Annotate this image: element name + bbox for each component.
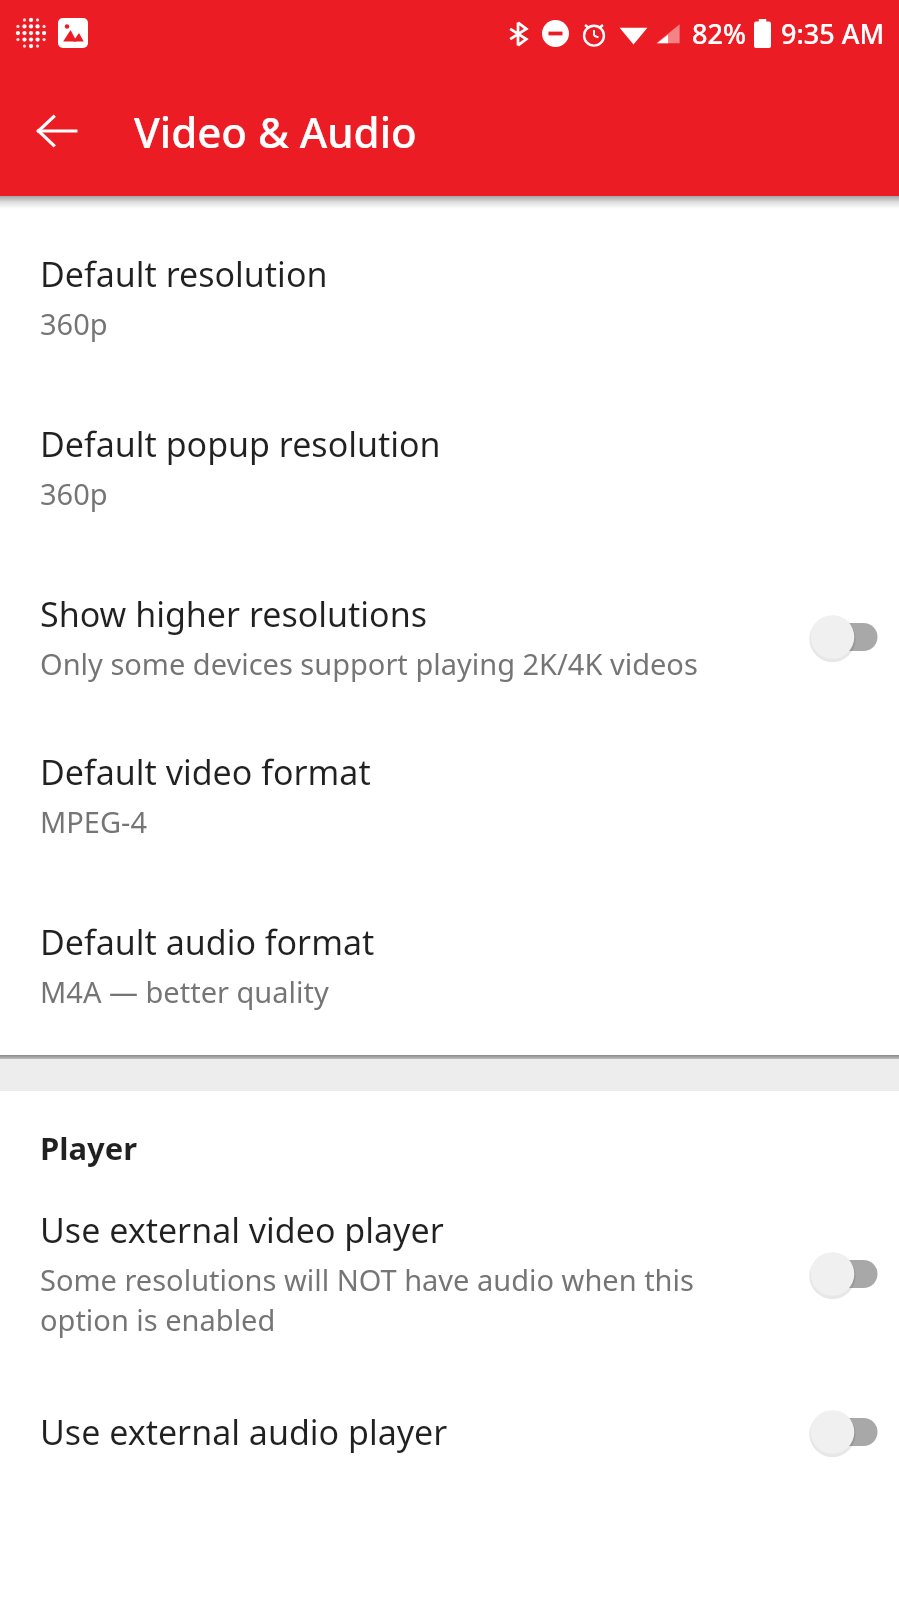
staticText: Use external video player [40,1207,444,1253]
button[interactable]: Toggle [793,611,881,663]
staticText: Default audio format [40,919,375,965]
button[interactable]: Use external audio player [0,1376,899,1498]
staticText: 360p [40,304,108,343]
staticText: Default resolution [40,251,328,297]
staticText: 82% [692,15,746,52]
button[interactable]: Use external video player [0,1185,899,1376]
button[interactable]: Default video format [0,719,899,883]
button[interactable]: Toggle [793,1248,881,1300]
staticText: Some resolutions will NOT have audio whe… [40,1260,779,1340]
button[interactable]: Default audio format [0,883,899,1055]
staticText: Video & Audio [134,103,417,160]
staticText: Use external audio player [40,1409,448,1455]
staticText: Default popup resolution [40,421,441,467]
staticText: Default video format [40,749,371,795]
staticText: 9:35 AM [781,15,885,52]
button[interactable]: Default resolution [0,209,899,385]
staticText: MPEG-4 [40,802,148,841]
staticText: Show higher resolutions [40,591,427,637]
button[interactable]: Toggle [793,1406,881,1458]
staticText: Player [40,1127,138,1169]
staticText: Only some devices support playing 2K/4K … [40,644,698,683]
staticText: M4A — better quality [40,972,329,1011]
button[interactable]: Show higher resolutions [0,555,899,719]
button[interactable]: Default popup resolution [0,385,899,555]
button[interactable]: Back [26,100,88,162]
staticText: 360p [40,474,108,513]
